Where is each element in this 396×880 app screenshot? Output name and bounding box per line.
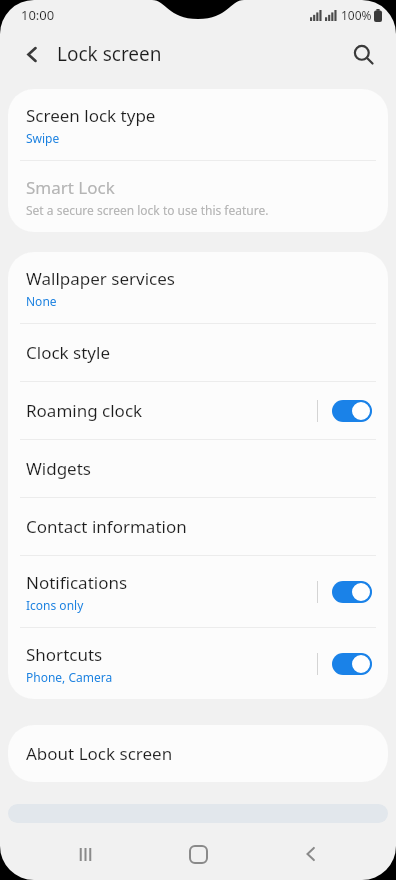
staticText: Roaming clock [26,399,143,422]
button[interactable]: Toggle Roaming clock [317,382,372,439]
button[interactable]: Back [10,32,54,76]
button[interactable]: Widgets [8,440,388,497]
staticText: Clock style [26,341,110,364]
staticText: 10:00 [21,6,55,24]
staticText: Screen lock type [26,104,156,127]
button[interactable]: Screen lock type [8,89,388,160]
button[interactable]: Toggle Notifications [317,556,372,627]
staticText: Icons only [26,597,84,613]
button[interactable]: About Lock screen [8,725,388,782]
staticText: Swipe [26,130,60,146]
staticText: Set a secure screen lock to use this fea… [26,202,269,218]
staticText: Shortcuts [26,643,103,666]
staticText: None [26,293,57,309]
button[interactable]: Wallpaper services [8,252,388,323]
button[interactable]: Contact information [8,498,388,555]
button[interactable]: Shortcuts [8,628,388,699]
button[interactable]: Recents [57,828,113,880]
button[interactable]: Back [283,828,339,880]
staticText: Wallpaper services [26,267,175,290]
staticText: Widgets [26,457,91,480]
button[interactable]: Clock style [8,324,388,381]
button[interactable]: Smart Lock [8,161,388,232]
staticText: Contact information [26,515,187,538]
button[interactable]: Toggle Shortcuts [317,628,372,699]
staticText: About Lock screen [26,742,173,765]
button[interactable]: Roaming clock [8,382,388,439]
button[interactable]: Search [341,32,385,76]
staticText: Notifications [26,571,128,594]
staticText: Lock screen [57,41,162,67]
staticText: Phone, Camera [26,669,113,685]
button[interactable]: Notifications [8,556,388,627]
staticText: 100% [341,7,372,23]
button[interactable]: Home [170,828,226,880]
staticText: Smart Lock [26,176,115,199]
